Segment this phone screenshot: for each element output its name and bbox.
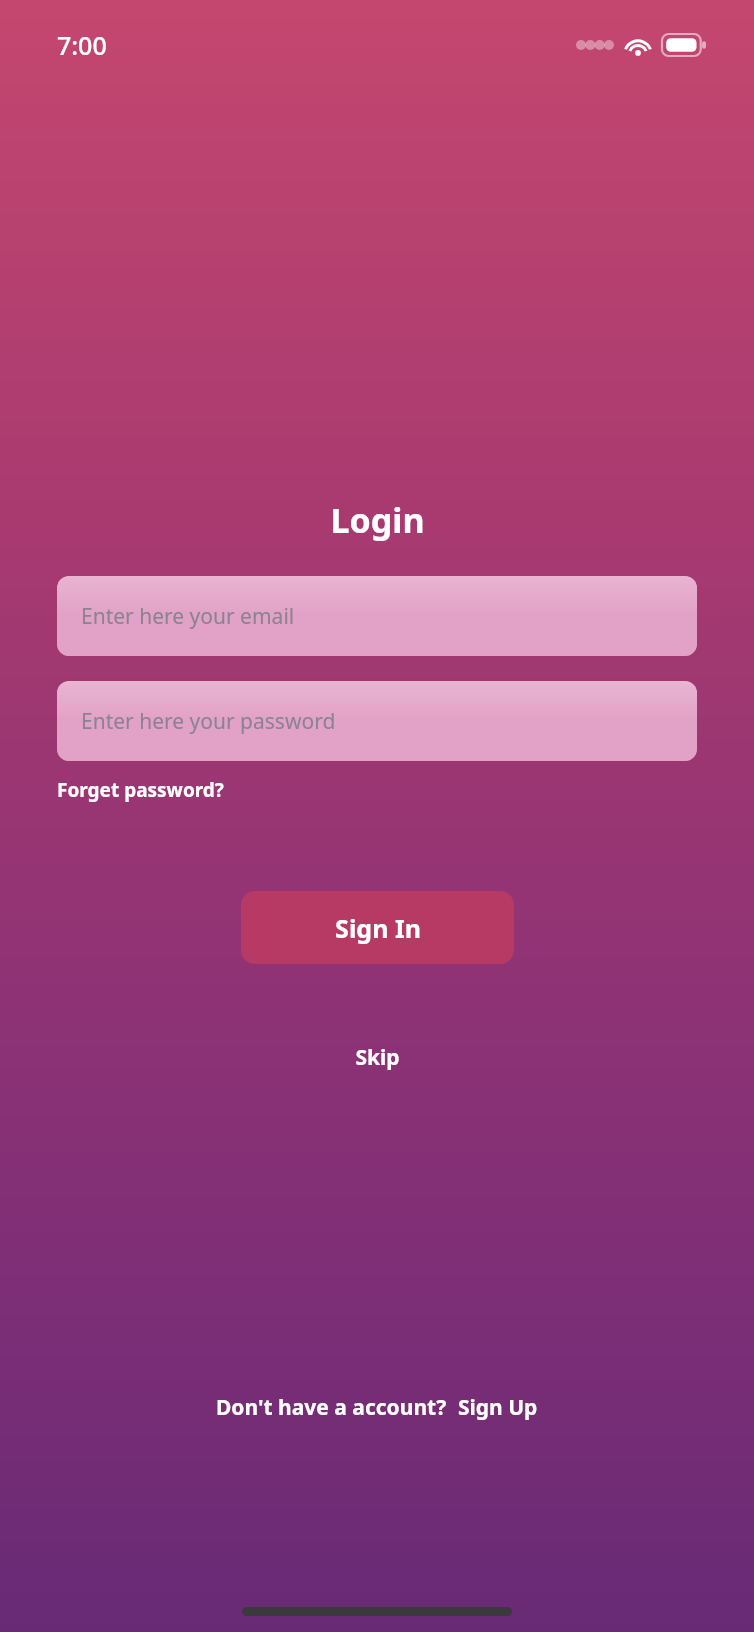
staticText: Sign In [335,911,421,945]
staticText: Login [330,497,425,543]
button[interactable]: Sign Up [458,1393,538,1422]
staticText: Enter here your password [81,707,336,736]
button[interactable]: Skip [345,1039,410,1076]
staticText: Skip [355,1043,400,1072]
staticText: 7:00 [57,28,107,62]
button[interactable]: Enter here your email [57,576,697,656]
button[interactable]: Forget password? [57,775,224,805]
staticText: Enter here your email [81,602,295,631]
staticText: Forget password? [57,777,224,803]
button[interactable]: Enter here your password [57,681,697,761]
staticText: Don't have a account? [216,1393,447,1422]
button[interactable]: Sign In [241,891,514,964]
staticText: Sign Up [458,1393,538,1422]
